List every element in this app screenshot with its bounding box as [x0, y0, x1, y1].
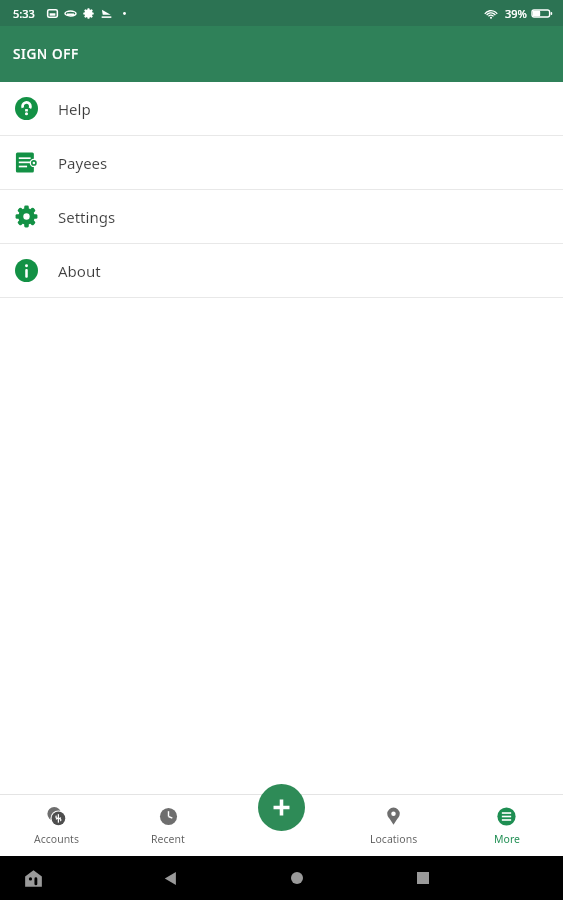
button[interactable]: Add: [258, 784, 305, 831]
button[interactable]: Help: [0, 82, 563, 135]
staticText: 5:33: [13, 6, 35, 21]
staticText: Accounts: [34, 832, 79, 846]
button[interactable]: Back: [153, 861, 187, 895]
staticText: Payees: [58, 153, 108, 173]
staticText: Locations: [370, 832, 418, 846]
staticText: 39%: [505, 6, 527, 21]
button[interactable]: More: [450, 795, 563, 856]
staticText: More: [494, 832, 520, 846]
button[interactable]: Recent: [112, 795, 224, 856]
button[interactable]: Accounts: [0, 795, 112, 856]
button[interactable]: Input method: [22, 867, 44, 889]
button[interactable]: SIGN OFF: [0, 36, 92, 72]
button[interactable]: Home: [280, 861, 314, 895]
button[interactable]: Settings: [0, 190, 563, 243]
button[interactable]: About: [0, 244, 563, 297]
staticText: Settings: [58, 207, 116, 227]
staticText: About: [58, 261, 101, 281]
button[interactable]: Payees: [0, 136, 563, 189]
staticText: SIGN OFF: [13, 45, 79, 63]
staticText: Recent: [151, 832, 185, 846]
staticText: Help: [58, 99, 91, 119]
button[interactable]: Locations: [337, 795, 450, 856]
button[interactable]: Recent apps: [406, 861, 440, 895]
